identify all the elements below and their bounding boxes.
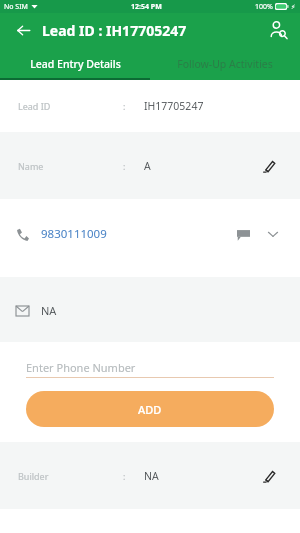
button[interactable]: Builder	[0, 442, 300, 509]
button[interactable]: Lead Entry Details	[0, 47, 150, 80]
staticText: 9830111009	[41, 226, 232, 242]
staticText: :	[123, 100, 126, 112]
staticText: :	[123, 470, 126, 482]
staticText: ADD	[138, 402, 162, 417]
staticText: NA	[41, 303, 57, 318]
staticText: Lead ID : IH17705247	[42, 21, 187, 40]
button[interactable]: 9830111009	[0, 199, 300, 277]
staticText: A	[144, 159, 256, 173]
staticText: :	[123, 160, 126, 172]
staticText: Builder	[18, 470, 123, 482]
staticText: Name	[18, 160, 123, 172]
button[interactable]: Edit Name	[256, 153, 282, 179]
staticText: Follow-Up Activities	[177, 57, 273, 71]
button[interactable]: Search lead	[264, 16, 292, 44]
button[interactable]: Name	[0, 132, 300, 199]
button[interactable]: Enter Phone Number	[26, 356, 274, 378]
button[interactable]: NA	[0, 277, 300, 342]
staticText: Lead ID	[18, 100, 123, 112]
staticText: 12:54 PM	[131, 2, 162, 12]
staticText: Enter Phone Number	[26, 360, 136, 375]
staticText: No SIM	[4, 2, 28, 12]
button[interactable]: Follow-Up Activities	[150, 47, 300, 80]
button[interactable]: Send message	[232, 223, 254, 245]
button[interactable]: Lead ID	[0, 80, 300, 132]
staticText: IH17705247	[144, 99, 282, 113]
button[interactable]: Expand	[262, 223, 284, 245]
staticText: Lead Entry Details	[30, 57, 121, 71]
button[interactable]: Back	[12, 19, 34, 41]
button[interactable]: Edit Builder	[256, 463, 282, 489]
staticText: NA	[144, 469, 256, 483]
staticText: 100%	[255, 2, 273, 12]
button[interactable]: ADD	[26, 391, 274, 427]
staticText: ⚡	[291, 3, 296, 10]
